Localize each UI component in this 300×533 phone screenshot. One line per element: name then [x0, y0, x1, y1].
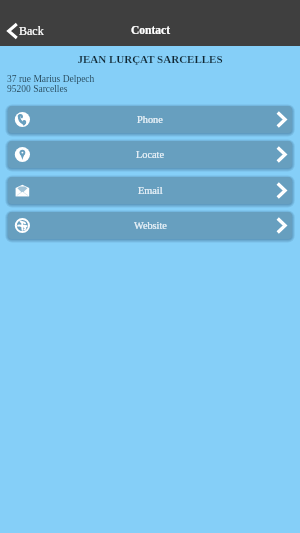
- staticText: Phone: [137, 114, 163, 125]
- staticText: Email: [138, 185, 163, 196]
- staticText: 37 rue Marius Delpech 95200 Sarcelles: [7, 74, 95, 94]
- button[interactable]: Email: [8, 177, 292, 204]
- staticText: Back: [19, 24, 44, 37]
- other: Back: [7, 23, 17, 39]
- button[interactable]: Phone: [8, 106, 292, 133]
- staticText: JEAN LURÇAT SARCELLES: [0, 53, 300, 65]
- button[interactable]: Back: [0, 17, 52, 43]
- button[interactable]: Locate: [8, 141, 292, 168]
- staticText: Website: [134, 220, 167, 231]
- staticText: Contact: [131, 24, 170, 37]
- staticText: Locate: [136, 149, 165, 160]
- button[interactable]: Website: [8, 212, 292, 239]
